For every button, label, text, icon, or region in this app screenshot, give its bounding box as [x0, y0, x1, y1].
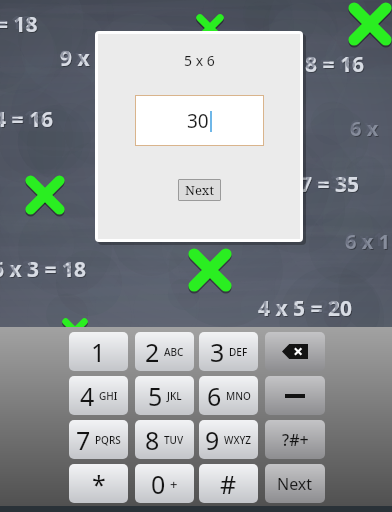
button[interactable]: 8 [135, 420, 194, 459]
staticText: WXYZ [224, 433, 252, 447]
staticText: 9 x [61, 45, 91, 74]
staticText: = 18 [0, 10, 32, 35]
staticText: 0 [151, 467, 166, 501]
button[interactable]: # [199, 464, 258, 503]
staticText: 2 [145, 335, 160, 369]
staticText: * [92, 467, 106, 501]
staticText: PQRS [95, 433, 121, 447]
staticText: 6 x 1 [346, 229, 391, 256]
staticText: 9 [205, 423, 220, 457]
staticText: 3 [210, 335, 225, 369]
staticText: 6 x 3 = 18 [0, 255, 87, 284]
staticText: # [220, 467, 237, 501]
button[interactable]: 0 [135, 464, 194, 503]
button[interactable]: 1 [69, 332, 128, 371]
staticText: 9 x [60, 44, 86, 69]
staticText: 7 [76, 423, 91, 457]
staticText: 4 = 16 [0, 105, 53, 134]
button[interactable]: 5 [135, 376, 194, 415]
staticText: 6 x [350, 115, 379, 142]
staticText: Next [277, 473, 313, 495]
staticText: = 18 [0, 10, 38, 39]
staticText: ?#+ [282, 429, 309, 451]
button[interactable]: Next [178, 179, 221, 201]
staticText: 5 x 6 [184, 51, 215, 70]
button[interactable]: Minus [265, 376, 325, 415]
button[interactable]: 2 [135, 332, 194, 371]
staticText: 4 x 5 = 20 [258, 294, 353, 323]
button[interactable]: 9 [199, 420, 258, 459]
staticText: 8 = 16 [305, 50, 364, 79]
button[interactable]: 30 [135, 95, 264, 146]
staticText: 4 x 5 = 20 [258, 294, 339, 319]
staticText: 8 = 16 [306, 51, 365, 80]
staticText: 6 [207, 379, 222, 413]
staticText: 6 x 1 [345, 228, 390, 255]
button[interactable]: ?#+ [265, 420, 325, 459]
staticText: MNO [226, 389, 251, 403]
button[interactable]: * [69, 464, 128, 503]
staticText: JKL [167, 389, 182, 403]
staticText: 6 x 3 = 18 [0, 256, 88, 285]
button[interactable]: 7 [69, 420, 128, 459]
staticText: 8 = 16 [305, 50, 356, 75]
staticText: 1 [91, 335, 106, 369]
staticText: 7 = 35 [300, 170, 359, 199]
staticText: GHI [99, 389, 118, 403]
staticText: 9 x [60, 44, 90, 73]
button[interactable]: 6 [199, 376, 258, 415]
button[interactable]: Delete [265, 332, 325, 371]
button[interactable]: Next [265, 464, 325, 503]
staticText: 5 [148, 379, 163, 413]
staticText: 6 x [350, 115, 374, 138]
staticText: 7 = 35 [301, 171, 360, 200]
staticText: 7 = 35 [300, 170, 351, 195]
staticText: TUV [164, 433, 184, 447]
staticText: 6 x 1 [345, 228, 384, 251]
staticText: 4 = 16 [0, 105, 45, 130]
staticText: = 18 [0, 11, 39, 40]
staticText: DEF [229, 345, 248, 359]
staticText: + [170, 475, 178, 493]
staticText: Next [185, 181, 214, 199]
staticText: 4 [80, 379, 95, 413]
staticText: 8 [145, 423, 160, 457]
staticText: 6 x 3 = 18 [0, 255, 73, 280]
staticText: ABC [164, 345, 184, 359]
button[interactable]: 3 [199, 332, 258, 371]
button[interactable]: 4 [69, 376, 128, 415]
staticText: 4 x 5 = 20 [259, 295, 354, 324]
staticText: 30 [187, 108, 209, 134]
staticText: 6 x [351, 116, 380, 143]
staticText: 4 = 16 [0, 106, 54, 135]
